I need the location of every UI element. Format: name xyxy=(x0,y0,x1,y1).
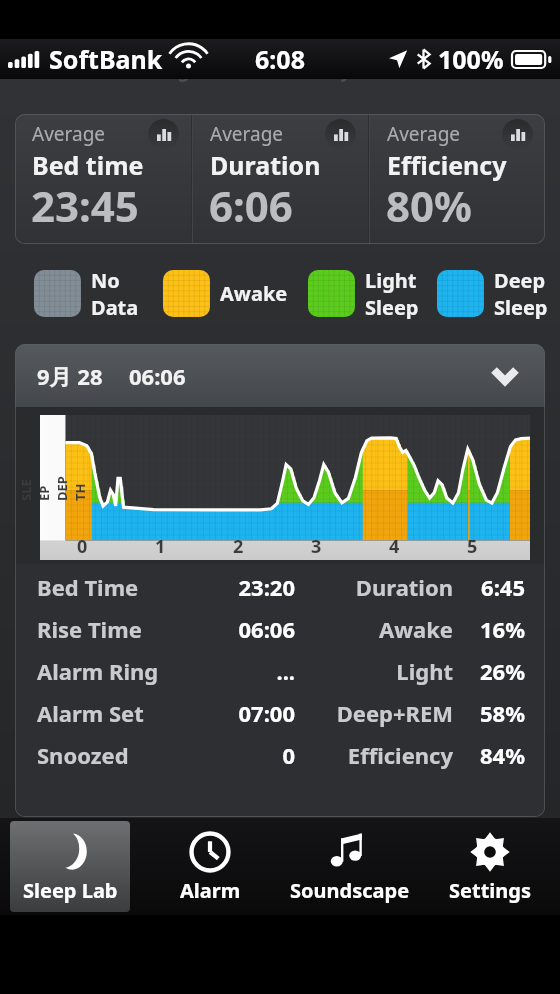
button[interactable]: Light xyxy=(308,267,419,319)
other: Sleep Lab xyxy=(49,831,91,873)
staticText: 16% xyxy=(453,614,525,644)
button[interactable]: Alarm Set xyxy=(15,692,545,734)
staticText: Average xyxy=(387,121,461,147)
button[interactable]: Alarm xyxy=(150,821,270,912)
button[interactable]: No xyxy=(34,267,139,319)
staticText: 0 xyxy=(160,740,295,770)
button[interactable]: Alarm Ring xyxy=(15,650,545,692)
other: Collapse xyxy=(491,367,519,384)
staticText: 2 xyxy=(233,534,244,559)
staticText: Light xyxy=(365,267,417,294)
staticText: Sleep xyxy=(494,294,548,319)
button[interactable]: Rise Time xyxy=(15,608,545,650)
button[interactable]: Soundscape xyxy=(290,821,410,912)
other: Soundscape xyxy=(330,832,370,872)
staticText: Awake xyxy=(295,614,453,644)
staticText: 06:06 xyxy=(160,614,295,644)
staticText: 100% xyxy=(438,42,504,76)
staticText: 26% xyxy=(453,656,525,686)
staticText: Awake xyxy=(220,280,288,307)
other: Alarm xyxy=(189,831,231,873)
staticText: Light xyxy=(295,656,453,686)
button[interactable]: Weekly chart for Efficiency xyxy=(502,119,533,150)
button[interactable]: 9月 28 xyxy=(15,344,545,407)
staticText: 06:06 xyxy=(129,361,186,391)
staticText: 3 xyxy=(311,534,322,559)
staticText: 4 xyxy=(389,534,400,559)
staticText: Alarm xyxy=(180,877,241,904)
staticText: 80% xyxy=(386,177,472,234)
button[interactable]: Deep xyxy=(437,267,548,319)
staticText: Alarm Ring xyxy=(37,656,159,686)
staticText: 07:00 xyxy=(160,698,295,728)
button[interactable]: Snoozed xyxy=(15,734,545,776)
button[interactable]: Weekly chart for Duration xyxy=(325,119,356,150)
staticText: Deep+REM xyxy=(295,698,453,728)
staticText: Average xyxy=(32,121,106,147)
staticText: Snoozed xyxy=(37,740,129,770)
staticText: No xyxy=(91,267,120,294)
staticText: Average xyxy=(210,121,284,147)
staticText: Duration xyxy=(210,148,321,182)
staticText: Bed Time xyxy=(37,572,139,602)
staticText: 58% xyxy=(453,698,525,728)
staticText: Sleep Lab xyxy=(23,877,118,904)
other: Settings xyxy=(469,831,511,873)
staticText: ... xyxy=(160,656,295,686)
staticText: 23:45 xyxy=(31,177,139,234)
staticText: 23:20 xyxy=(160,572,295,602)
staticText: Efficiency xyxy=(387,148,507,182)
staticText: SLEEP DEPTH xyxy=(17,475,89,501)
staticText: Data xyxy=(91,294,139,319)
button[interactable]: Bed Time xyxy=(15,566,545,608)
staticText: 1 xyxy=(155,534,166,559)
button[interactable]: Average xyxy=(370,114,545,244)
staticText: Duration xyxy=(295,572,453,602)
staticText: Efficiency xyxy=(295,740,453,770)
staticText: 5 xyxy=(467,534,478,559)
staticText: Alarm Set xyxy=(37,698,144,728)
staticText: Deep xyxy=(494,267,546,294)
button[interactable]: Sleep Lab xyxy=(10,821,130,912)
staticText: SoftBank xyxy=(49,42,163,76)
staticText: Drag down for weekly charts xyxy=(144,57,417,83)
button[interactable]: Weekly chart for Bed time xyxy=(148,119,179,150)
staticText: Rise Time xyxy=(37,614,142,644)
staticText: Bed time xyxy=(32,148,144,182)
staticText: 84% xyxy=(453,740,525,770)
button[interactable]: Average xyxy=(193,114,368,244)
staticText: 6:06 xyxy=(209,177,293,234)
button[interactable]: Settings xyxy=(430,821,550,912)
staticText: Soundscape xyxy=(290,877,410,904)
staticText: 0 xyxy=(77,534,88,559)
staticText: 6:45 xyxy=(453,572,525,602)
button[interactable]: Awake xyxy=(163,270,288,317)
staticText: 6:08 xyxy=(255,42,305,76)
button[interactable]: Average xyxy=(15,114,191,244)
staticText: 9月 28 xyxy=(37,361,103,391)
staticText: Settings xyxy=(449,877,531,904)
staticText: Sleep xyxy=(365,294,419,319)
